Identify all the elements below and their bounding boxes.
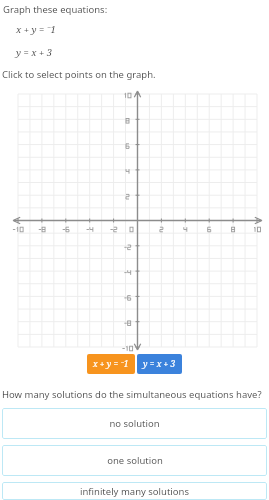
staticText: How many solutions do the simultaneous e… (2, 388, 262, 401)
staticText: Click to select points on the graph. (2, 68, 156, 81)
staticText: y = x + 3 (16, 46, 53, 59)
button[interactable]: y = x + 3 (137, 354, 182, 374)
staticText: y = x + 3 (143, 358, 176, 370)
button[interactable]: Coordinate graph, click to plot points (0, 86, 269, 351)
staticText: no solution (109, 417, 160, 430)
staticText: x + y = ⁻1 (16, 23, 56, 36)
button[interactable]: infinitely many solutions (2, 482, 267, 500)
staticText: x + y = ⁻1 (93, 358, 129, 370)
button[interactable]: x + y = ⁻1 (87, 354, 135, 374)
staticText: one solution (107, 454, 163, 467)
staticText: Graph these equations: (3, 3, 108, 16)
button[interactable]: no solution (2, 408, 267, 439)
staticText: infinitely many solutions (80, 485, 189, 498)
button[interactable]: one solution (2, 445, 267, 476)
